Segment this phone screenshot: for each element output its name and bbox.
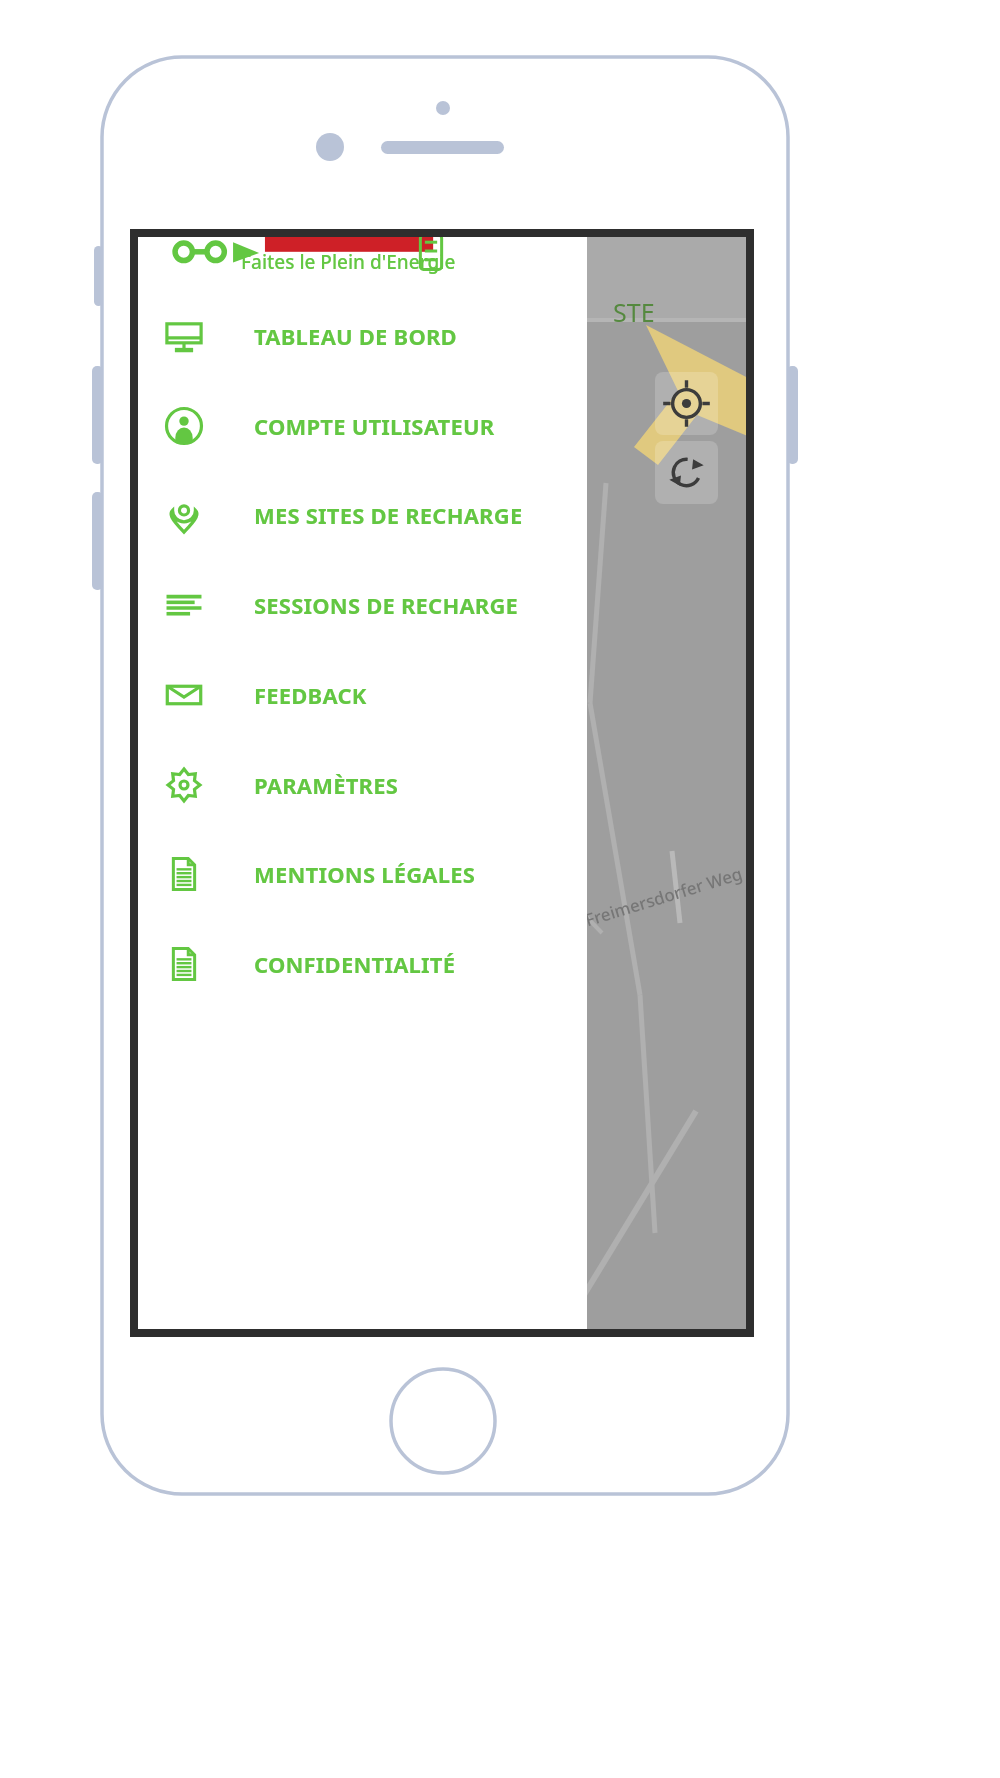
button[interactable]: MES SITES DE RECHARGE bbox=[134, 471, 587, 559]
staticText: COMPTE UTILISATEUR bbox=[254, 411, 495, 441]
staticText: STE bbox=[613, 295, 655, 329]
staticText: CONFIDENTIALITÉ bbox=[254, 949, 456, 979]
staticText: Freimersdorfer Weg bbox=[582, 862, 745, 931]
staticText: MENTIONS LÉGALES bbox=[254, 859, 476, 889]
staticText: FEEDBACK bbox=[254, 680, 367, 710]
button[interactable]: SESSIONS DE RECHARGE bbox=[134, 561, 587, 649]
button[interactable]: Refresh bbox=[655, 441, 718, 504]
button[interactable]: FEEDBACK bbox=[134, 651, 587, 739]
button[interactable]: PARAMÈTRES bbox=[134, 741, 587, 829]
staticText: Faites le Plein d'Energie bbox=[241, 249, 456, 275]
staticText: MES SITES DE RECHARGE bbox=[254, 500, 523, 530]
staticText: PARAMÈTRES bbox=[254, 770, 399, 800]
button[interactable]: My location bbox=[655, 372, 718, 435]
button[interactable]: CONFIDENTIALITÉ bbox=[134, 920, 587, 1008]
button[interactable]: COMPTE UTILISATEUR bbox=[134, 382, 587, 470]
button[interactable]: TABLEAU DE BORD bbox=[134, 292, 587, 380]
staticText: SESSIONS DE RECHARGE bbox=[254, 590, 519, 620]
staticText: TABLEAU DE BORD bbox=[254, 321, 457, 351]
button[interactable]: MENTIONS LÉGALES bbox=[134, 830, 587, 918]
